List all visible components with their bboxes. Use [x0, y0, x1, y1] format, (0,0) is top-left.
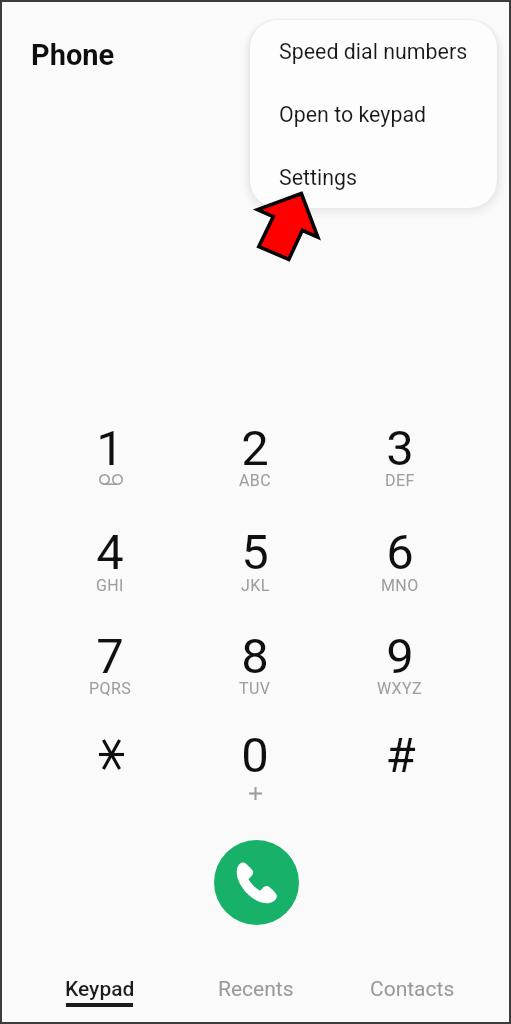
- button[interactable]: Dial 3: [352, 407, 448, 493]
- button[interactable]: Recents: [178, 952, 334, 1022]
- staticText: WXYZ: [377, 679, 423, 698]
- staticText: Phone: [31, 38, 115, 72]
- staticText: TUV: [239, 679, 271, 698]
- staticText: MNO: [381, 576, 419, 595]
- staticText: ABC: [239, 471, 272, 490]
- button[interactable]: Contacts: [334, 952, 490, 1022]
- button[interactable]: Dial *: [62, 714, 158, 800]
- staticText: 4: [96, 524, 124, 581]
- button[interactable]: Dial 8: [207, 615, 303, 701]
- staticText: DEF: [385, 471, 415, 490]
- staticText: 9: [386, 628, 414, 685]
- staticText: 2: [241, 420, 269, 477]
- staticText: Speed dial numbers: [279, 39, 468, 64]
- button[interactable]: Keypad: [21, 952, 178, 1022]
- button[interactable]: Dial 9: [352, 615, 448, 701]
- button[interactable]: Dial 7: [62, 615, 158, 701]
- button[interactable]: Call: [214, 840, 299, 925]
- button[interactable]: Open to keypad: [250, 83, 497, 146]
- staticText: 8: [241, 628, 269, 685]
- button[interactable]: Dial 4: [62, 511, 158, 597]
- button[interactable]: Speed dial numbers: [250, 20, 497, 83]
- staticText: GHI: [96, 576, 124, 595]
- staticText: 0: [241, 727, 269, 784]
- staticText: 6: [386, 524, 414, 581]
- staticText: Open to keypad: [279, 102, 427, 127]
- staticText: Keypad: [65, 977, 135, 1002]
- staticText: Contacts: [370, 977, 455, 1002]
- staticText: JKL: [241, 576, 270, 595]
- button[interactable]: Dial 5: [207, 511, 303, 597]
- staticText: 3: [386, 420, 414, 477]
- staticText: #: [385, 727, 416, 784]
- button[interactable]: Settings: [250, 146, 497, 208]
- button[interactable]: Dial 0: [207, 714, 303, 800]
- staticText: 7: [96, 628, 124, 685]
- button[interactable]: Dial 2: [207, 407, 303, 493]
- button[interactable]: Dial 1: [62, 407, 158, 493]
- staticText: PQRS: [89, 679, 132, 698]
- staticText: Recents: [218, 977, 294, 1002]
- button[interactable]: Dial 6: [352, 511, 448, 597]
- staticText: 5: [241, 524, 269, 581]
- staticText: Settings: [279, 165, 358, 190]
- button[interactable]: Dial #: [352, 714, 448, 800]
- staticText: 1: [96, 420, 124, 477]
